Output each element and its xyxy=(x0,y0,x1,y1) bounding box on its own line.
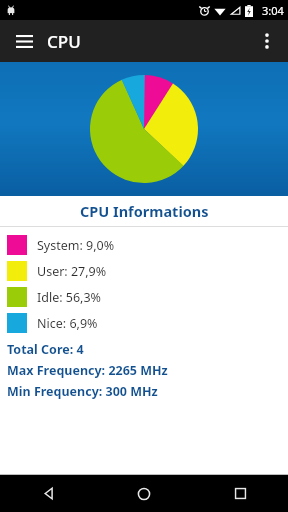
staticText: Total Core: 4 xyxy=(7,341,84,358)
button[interactable]: Home xyxy=(96,475,192,512)
staticText: CPU xyxy=(47,30,81,53)
staticText: 3:04 xyxy=(262,3,284,18)
button[interactable]: Idle: 56,3% xyxy=(0,284,288,310)
staticText: Min Frequency: 300 MHz xyxy=(7,383,158,400)
button[interactable]: User: 27,9% xyxy=(0,258,288,284)
staticText: Max Frequency: 2265 MHz xyxy=(7,362,168,379)
staticText: Nice: 6,9% xyxy=(37,315,98,332)
button[interactable]: System: 9,0% xyxy=(0,232,288,258)
button[interactable]: Recent apps xyxy=(192,475,288,512)
button[interactable]: Back xyxy=(0,475,96,512)
button[interactable]: Open navigation drawer xyxy=(8,25,40,57)
staticText: User: 27,9% xyxy=(37,263,107,280)
button[interactable]: More options xyxy=(251,25,283,57)
staticText: Idle: 56,3% xyxy=(37,289,101,306)
staticText: CPU Informations xyxy=(80,201,209,221)
staticText: System: 9,0% xyxy=(37,237,115,254)
button[interactable]: Nice: 6,9% xyxy=(0,310,288,336)
